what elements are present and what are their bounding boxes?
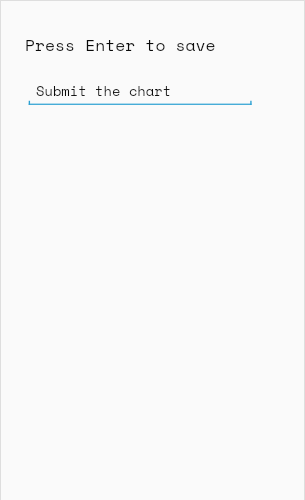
button[interactable]: Chart name text field [28,78,252,107]
staticText: Press Enter to save [25,33,216,57]
staticText: Submit the chart [36,81,172,101]
